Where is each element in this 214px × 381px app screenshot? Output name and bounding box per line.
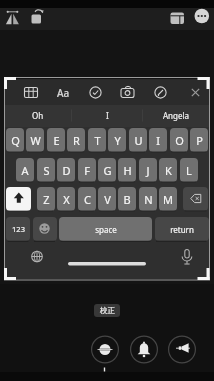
button[interactable]: Oh xyxy=(24,108,52,122)
staticText: X xyxy=(63,192,70,207)
button[interactable]: Angela xyxy=(160,108,192,122)
button[interactable]: A xyxy=(16,158,34,182)
button[interactable]: X xyxy=(57,187,75,211)
button[interactable] xyxy=(6,187,31,211)
staticText: G xyxy=(103,163,112,178)
button[interactable]: U xyxy=(129,128,147,152)
staticText: N xyxy=(144,192,153,207)
button[interactable] xyxy=(33,217,57,241)
staticText: O xyxy=(175,133,184,148)
button[interactable]: M xyxy=(159,187,177,211)
staticText: Y xyxy=(114,133,121,148)
button[interactable]: G xyxy=(98,158,116,182)
button[interactable]: F xyxy=(78,158,96,182)
staticText: S xyxy=(43,163,50,178)
button[interactable]: Aa xyxy=(52,85,74,101)
staticText: 123 xyxy=(12,224,25,234)
staticText: I xyxy=(156,133,160,148)
staticText: F xyxy=(84,163,90,178)
staticText: U xyxy=(134,133,143,148)
staticText: Z xyxy=(43,192,50,207)
staticText: H xyxy=(123,163,132,178)
button[interactable] xyxy=(28,8,50,28)
staticText: R xyxy=(73,133,80,148)
staticText: M xyxy=(163,192,173,207)
staticText: Q xyxy=(11,133,20,148)
button[interactable]: I xyxy=(149,128,167,152)
button[interactable]: Q xyxy=(6,128,24,152)
button[interactable] xyxy=(91,336,119,364)
staticText: J xyxy=(146,163,150,178)
button[interactable]: V xyxy=(98,187,116,211)
button[interactable]: N xyxy=(139,187,157,211)
button[interactable] xyxy=(166,8,188,28)
staticText: B xyxy=(123,192,131,207)
staticText: L xyxy=(186,163,192,178)
button[interactable]: S xyxy=(37,158,55,182)
staticText: T xyxy=(94,133,101,148)
staticText: Oh xyxy=(32,110,44,121)
button[interactable]: 123 xyxy=(6,217,30,241)
staticText: I xyxy=(106,110,109,121)
button[interactable]: O xyxy=(170,128,188,152)
button[interactable]: Y xyxy=(108,128,126,152)
staticText: A xyxy=(21,163,29,178)
staticText: Aa xyxy=(57,86,70,100)
button[interactable]: B xyxy=(118,187,136,211)
staticText: P xyxy=(196,133,203,148)
button[interactable] xyxy=(183,187,208,211)
staticText: return xyxy=(170,224,194,235)
staticText: E xyxy=(53,133,60,148)
staticText: V xyxy=(104,192,111,207)
button[interactable]: Z xyxy=(37,187,55,211)
button[interactable]: J xyxy=(139,158,157,182)
button[interactable]: T xyxy=(88,128,106,152)
button[interactable]: H xyxy=(118,158,136,182)
button[interactable] xyxy=(192,8,214,28)
button[interactable] xyxy=(168,336,196,364)
staticText: 校正 xyxy=(100,306,115,315)
button[interactable]: D xyxy=(57,158,75,182)
button[interactable]: L xyxy=(180,158,198,182)
button[interactable]: space xyxy=(59,217,152,241)
button[interactable] xyxy=(4,8,26,28)
button[interactable]: W xyxy=(26,128,44,152)
staticText: W xyxy=(30,133,41,148)
button[interactable]: return xyxy=(155,217,209,241)
staticText: D xyxy=(62,163,71,178)
staticText: K xyxy=(165,163,172,178)
button[interactable]: R xyxy=(67,128,85,152)
button[interactable]: K xyxy=(159,158,177,182)
staticText: space xyxy=(95,224,117,235)
button[interactable]: P xyxy=(190,128,208,152)
button[interactable]: C xyxy=(78,187,96,211)
button[interactable]: 校正 xyxy=(94,304,120,317)
button[interactable]: I xyxy=(93,108,121,122)
staticText: Angela xyxy=(163,110,190,121)
staticText: C xyxy=(84,192,91,207)
button[interactable] xyxy=(130,336,158,364)
button[interactable]: E xyxy=(47,128,65,152)
